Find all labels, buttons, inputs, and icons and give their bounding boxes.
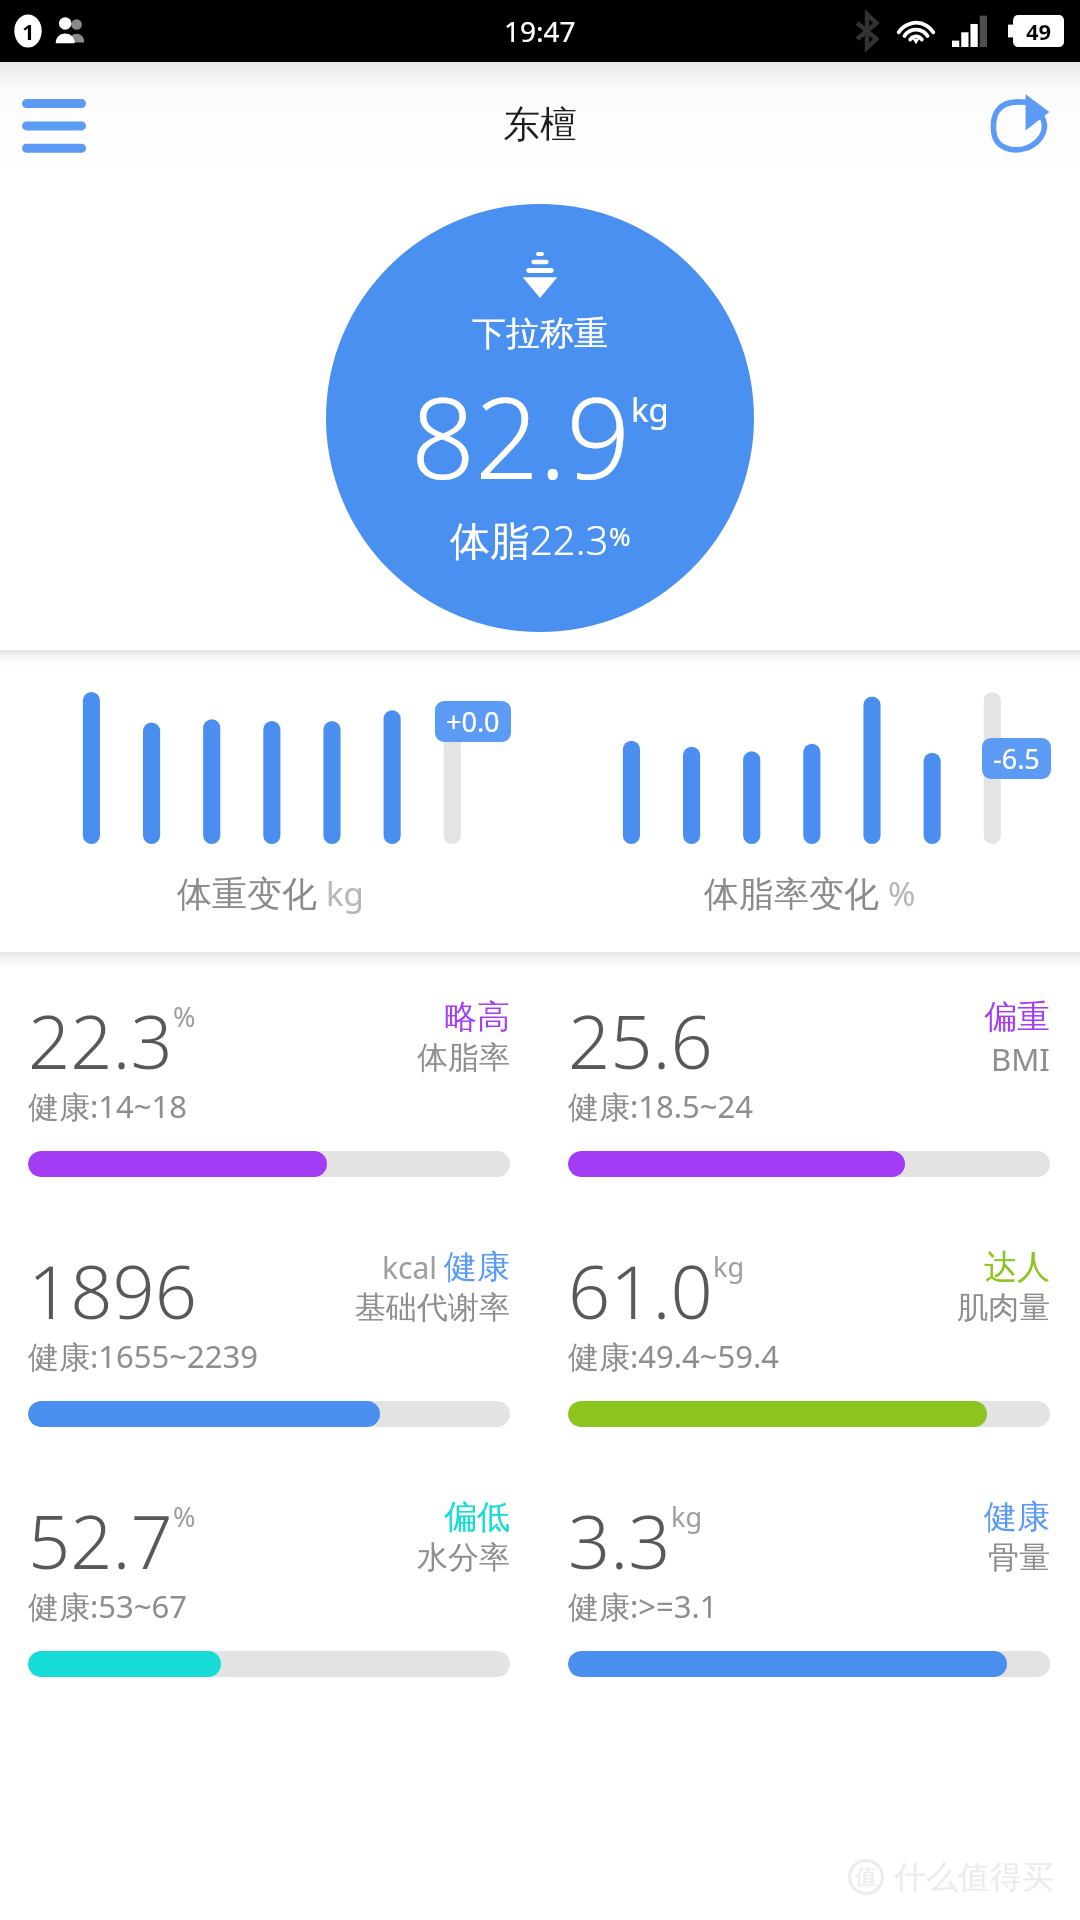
- staticText: 体脂率变化: [704, 872, 879, 916]
- button[interactable]: 22.3: [0, 968, 540, 1218]
- staticText: 什么值得买: [894, 1857, 1054, 1897]
- staticText: 19:47: [504, 12, 576, 50]
- staticText: 健康: [984, 1496, 1050, 1538]
- staticText: 基础代谢率: [355, 1288, 510, 1327]
- staticText: 25.6: [568, 990, 713, 1091]
- staticText: 体脂22.3: [450, 512, 609, 567]
- staticText: -6.5: [993, 740, 1040, 777]
- staticText: 82.9: [411, 359, 631, 512]
- staticText: %: [888, 871, 916, 916]
- staticText: 偏低: [444, 1496, 510, 1538]
- staticText: kg: [713, 1248, 745, 1285]
- staticText: 体重变化: [177, 872, 317, 916]
- staticText: 骨量: [988, 1538, 1050, 1577]
- button[interactable]: 3.3: [540, 1468, 1080, 1718]
- button[interactable]: Menu: [16, 81, 116, 167]
- button[interactable]: 61.0: [540, 1218, 1080, 1468]
- staticText: 体脂率: [417, 1038, 510, 1077]
- staticText: +0.0: [446, 703, 500, 740]
- staticText: 肌肉量: [957, 1288, 1050, 1327]
- staticText: 49: [1026, 16, 1052, 46]
- staticText: 3.3: [568, 1490, 671, 1591]
- staticText: %: [609, 518, 631, 553]
- staticText: kg: [671, 1498, 703, 1535]
- button[interactable]: 1896: [0, 1218, 540, 1468]
- button[interactable]: 下拉称重: [326, 204, 754, 632]
- staticText: 健康:1655~2239: [28, 1335, 258, 1377]
- staticText: %: [173, 1498, 196, 1535]
- staticText: 偏重: [984, 996, 1050, 1038]
- button[interactable]: 52.7: [0, 1468, 540, 1718]
- staticText: 22.3: [28, 990, 173, 1091]
- staticText: %: [173, 998, 196, 1035]
- button[interactable]: Share: [974, 81, 1060, 167]
- staticText: 健康: [444, 1246, 510, 1288]
- staticText: BMI: [991, 1038, 1050, 1080]
- staticText: 健康:49.4~59.4: [568, 1335, 780, 1377]
- staticText: 下拉称重: [472, 312, 608, 355]
- button[interactable]: +0.0: [0, 666, 540, 952]
- staticText: 1896: [28, 1240, 198, 1341]
- staticText: 值: [855, 1863, 877, 1891]
- staticText: 健康:53~67: [28, 1585, 187, 1627]
- staticText: 52.7: [28, 1490, 173, 1591]
- staticText: kg: [326, 871, 364, 916]
- staticText: 健康:18.5~24: [568, 1085, 754, 1127]
- staticText: 达人: [984, 1246, 1050, 1288]
- staticText: kg: [631, 387, 669, 432]
- button[interactable]: 25.6: [540, 968, 1080, 1218]
- staticText: 略高: [444, 996, 510, 1038]
- button[interactable]: -6.5: [540, 666, 1080, 952]
- staticText: 61.0: [568, 1240, 713, 1341]
- staticText: 健康:>=3.1: [568, 1585, 718, 1627]
- staticText: 东檀: [503, 101, 577, 148]
- staticText: 健康:14~18: [28, 1085, 187, 1127]
- staticText: 1: [22, 16, 35, 46]
- staticText: kcal: [382, 1247, 437, 1288]
- staticText: 水分率: [417, 1538, 510, 1577]
